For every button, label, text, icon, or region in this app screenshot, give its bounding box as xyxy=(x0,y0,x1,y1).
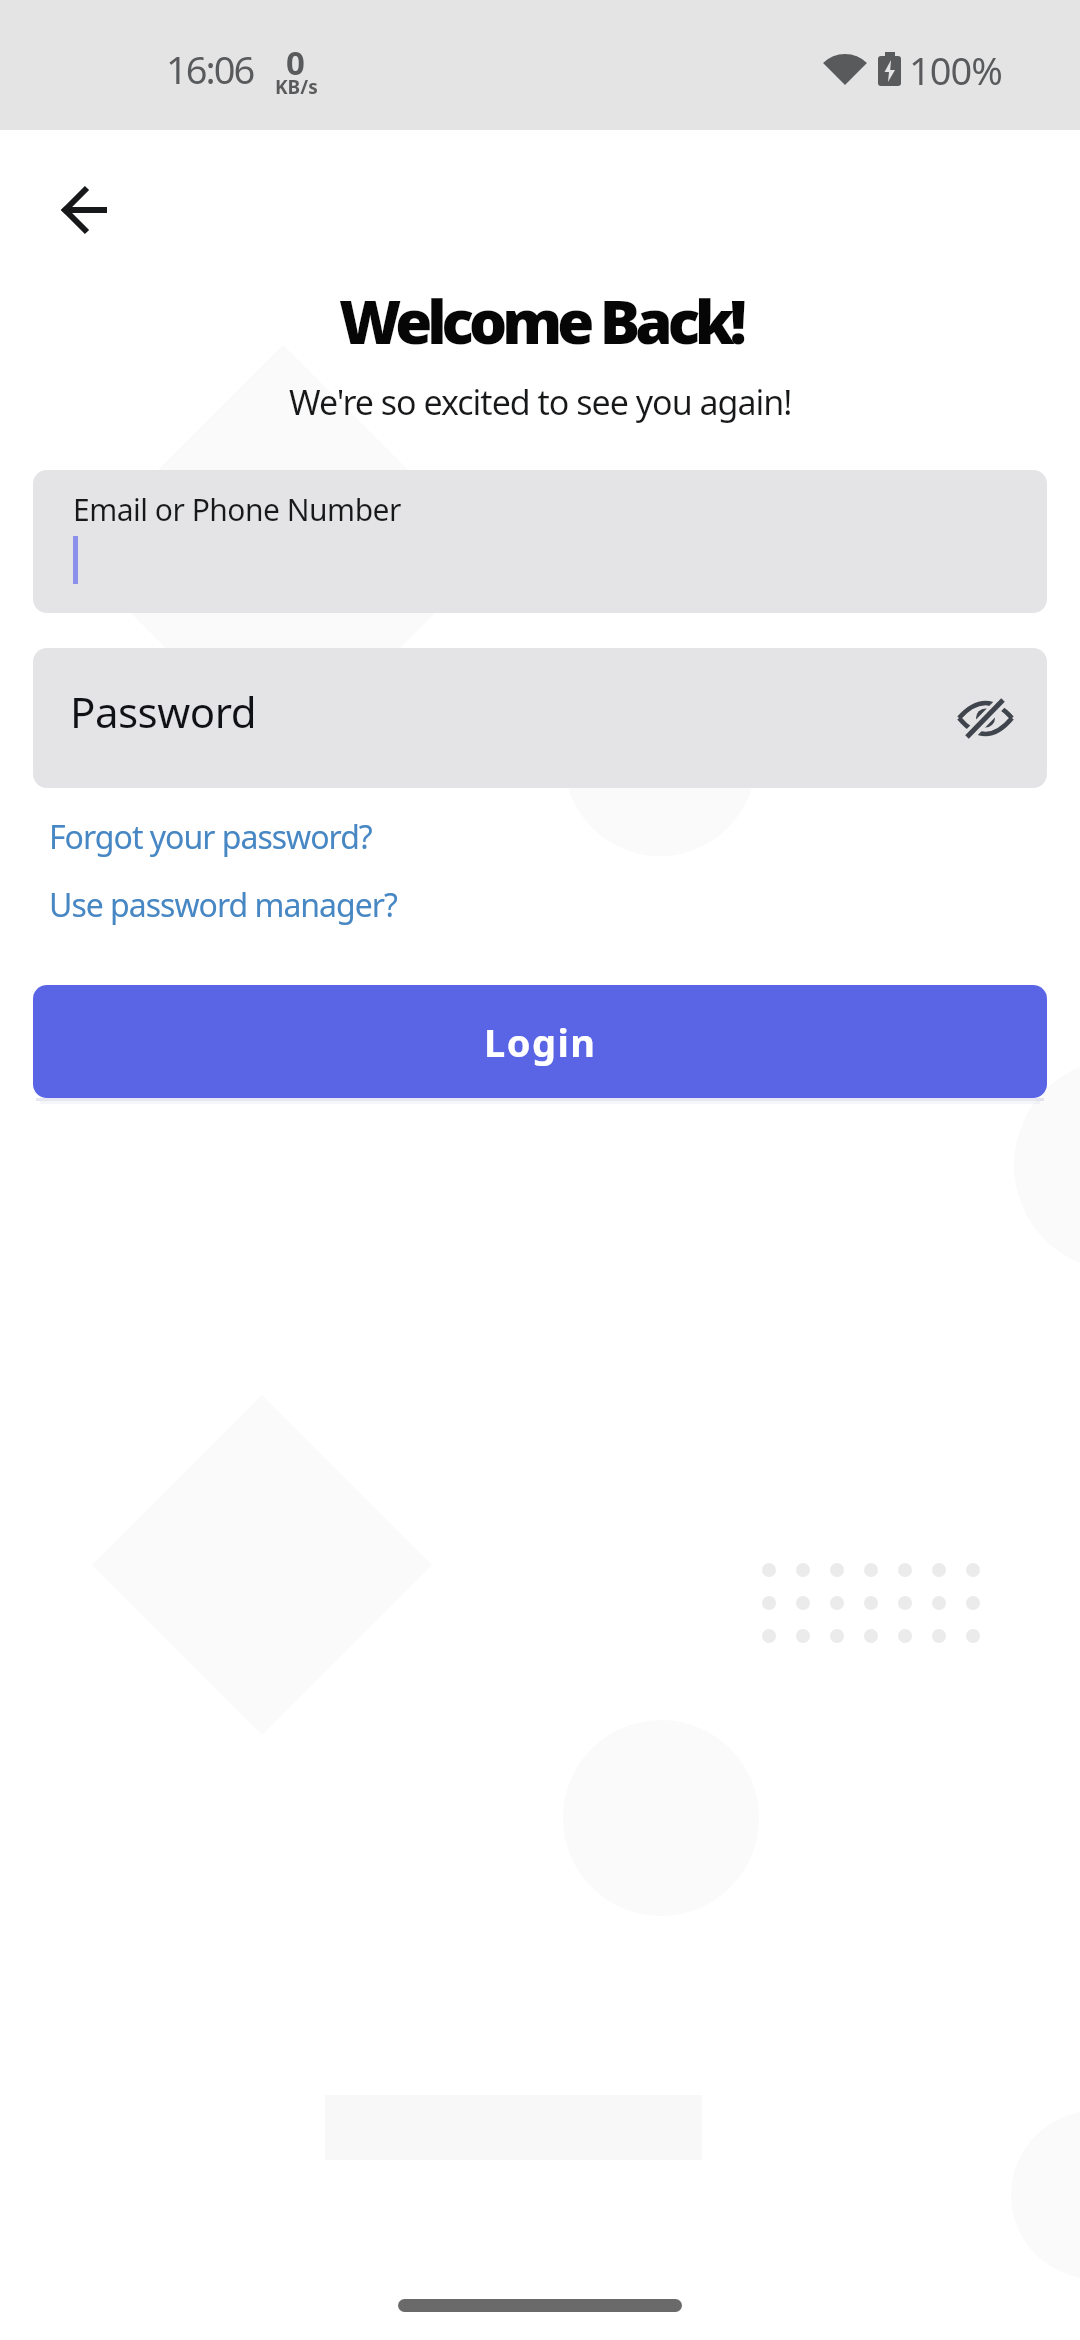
button[interactable]: Login xyxy=(33,985,1047,1098)
staticText: Email or Phone Number xyxy=(73,489,401,530)
button[interactable] xyxy=(953,690,1017,746)
button[interactable] xyxy=(48,174,120,246)
staticText: Welcome Back! xyxy=(339,280,742,362)
button[interactable]: Use password manager? xyxy=(49,883,397,927)
staticText: 100% xyxy=(909,44,1002,96)
button[interactable]: Password xyxy=(33,648,1047,788)
staticText: We're so excited to see you again! xyxy=(289,379,792,425)
button[interactable]: Forgot your password? xyxy=(49,815,372,859)
staticText: KB/s xyxy=(275,74,318,100)
staticText: 16:06 xyxy=(166,43,254,95)
staticText: Login xyxy=(484,1016,597,1068)
button[interactable]: Email or Phone Number xyxy=(33,470,1047,613)
staticText: Forgot your password? xyxy=(49,815,372,859)
staticText: Use password manager? xyxy=(49,883,397,927)
staticText: Password xyxy=(70,683,256,740)
staticText: 0 xyxy=(286,40,305,85)
